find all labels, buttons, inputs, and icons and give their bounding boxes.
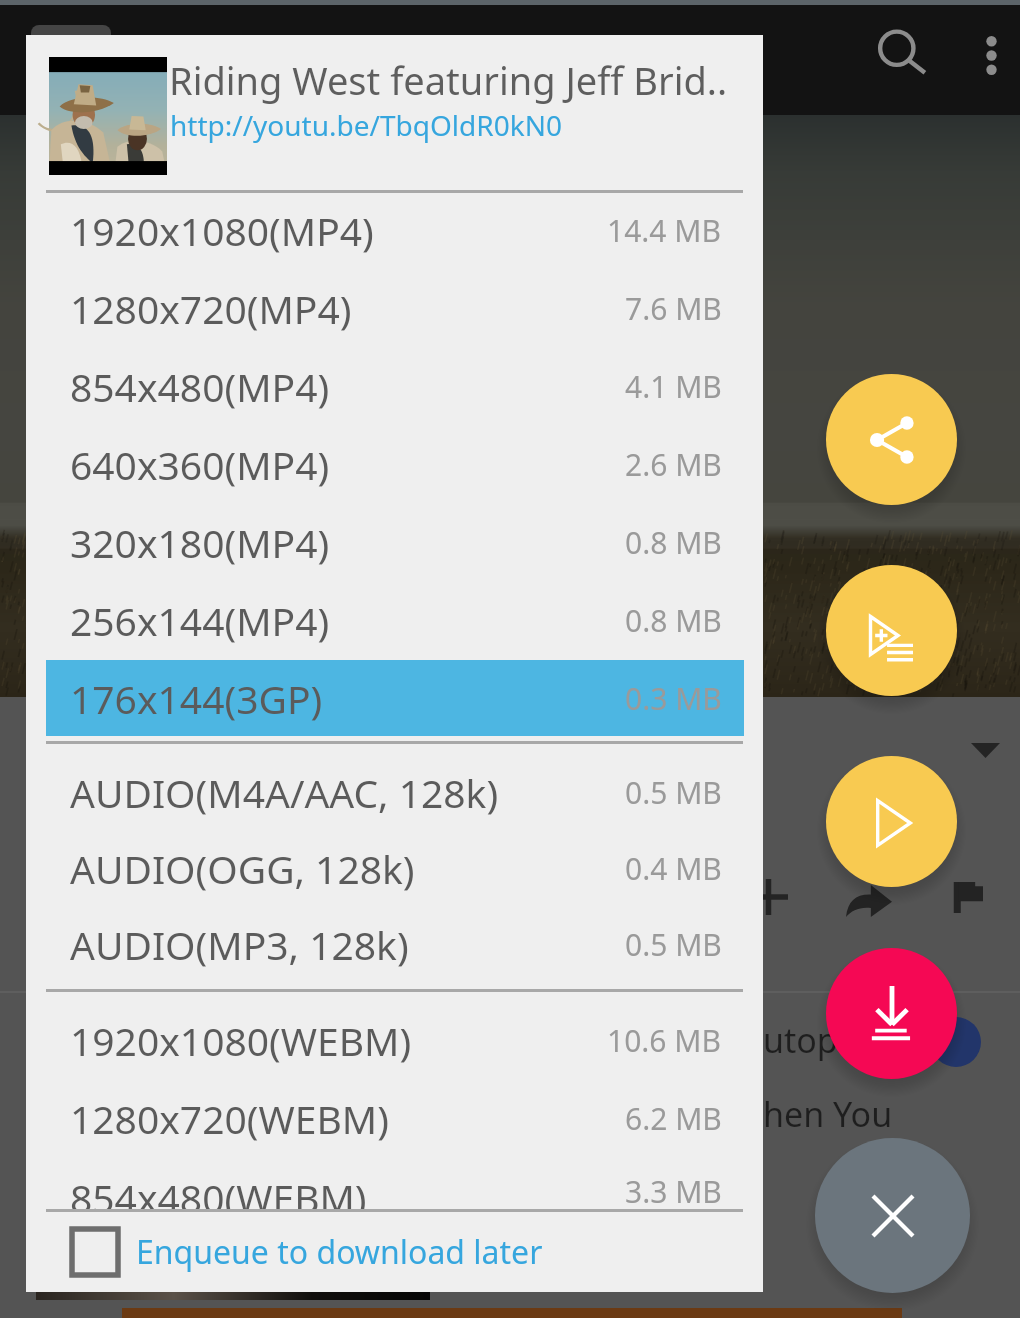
staticText: 0.5 MB	[625, 772, 722, 813]
button[interactable]: AUDIO(OGG, 128k)	[46, 830, 744, 906]
button[interactable]: Close	[815, 1138, 970, 1293]
button[interactable]: 176x144(3GP)	[46, 660, 744, 736]
staticText: 0.4 MB	[625, 848, 722, 889]
staticText: 0.8 MB	[625, 600, 722, 641]
button[interactable]: Download	[826, 948, 957, 1079]
button[interactable]: 320x180(MP4)	[46, 504, 744, 580]
staticText: 1920x1080(MP4)	[70, 204, 374, 257]
button[interactable]: Add to playlist	[826, 565, 957, 696]
button[interactable]: 854x480(MP4)	[46, 348, 744, 424]
staticText: 640x360(MP4)	[70, 438, 330, 491]
staticText: 1280x720(MP4)	[70, 282, 352, 335]
button[interactable]: 854x480(WEBM)	[46, 1171, 744, 1209]
button[interactable]: 1920x1080(WEBM)	[46, 1002, 744, 1078]
button[interactable]: 256x144(MP4)	[46, 582, 744, 658]
staticText: Riding West featuring Jeff Brid..	[169, 54, 728, 106]
staticText: 320x180(MP4)	[70, 516, 330, 569]
staticText: 854x480(WEBM)	[70, 1171, 367, 1209]
button[interactable]: 1920x1080(MP4)	[46, 192, 744, 268]
button[interactable]: More options	[941, 5, 1020, 105]
button[interactable]: 1280x720(WEBM)	[46, 1080, 744, 1156]
staticText: AUDIO(M4A/AAC, 128k)	[70, 766, 499, 819]
button[interactable]: Enqueue to download later	[26, 1212, 763, 1292]
staticText: 1920x1080(WEBM)	[70, 1014, 412, 1067]
button[interactable]: 640x360(MP4)	[46, 426, 744, 502]
button[interactable]: Play	[826, 756, 957, 887]
staticText: Enqueue to download later	[136, 1230, 543, 1274]
staticText: 0.5 MB	[625, 924, 722, 965]
staticText: 14.4 MB	[607, 210, 722, 251]
staticText: http://youtu.be/TbqOldR0kN0	[170, 106, 562, 144]
button[interactable]: Search	[852, 5, 952, 105]
staticText: 2.6 MB	[625, 444, 722, 485]
staticText: hen You	[763, 1091, 893, 1137]
staticText: 3.3 MB	[625, 1171, 722, 1209]
staticText: 854x480(MP4)	[70, 360, 330, 413]
staticText: 4.1 MB	[625, 366, 722, 407]
staticText: 0.3 MB	[625, 678, 722, 719]
staticText: 10.6 MB	[607, 1020, 722, 1061]
staticText: AUDIO(OGG, 128k)	[70, 842, 415, 895]
button[interactable]: 1280x720(MP4)	[46, 270, 744, 346]
staticText: 1280x720(WEBM)	[70, 1092, 389, 1145]
staticText: 0.8 MB	[625, 522, 722, 563]
staticText: 7.6 MB	[625, 288, 722, 329]
button[interactable]: AUDIO(M4A/AAC, 128k)	[46, 754, 744, 830]
button[interactable]: Share	[826, 374, 957, 505]
staticText: 6.2 MB	[625, 1098, 722, 1139]
staticText: 176x144(3GP)	[70, 672, 323, 725]
button[interactable]: AUDIO(MP3, 128k)	[46, 906, 744, 982]
staticText: 256x144(MP4)	[70, 594, 330, 647]
staticText: utop	[763, 1017, 838, 1063]
staticText: AUDIO(MP3, 128k)	[70, 918, 409, 971]
